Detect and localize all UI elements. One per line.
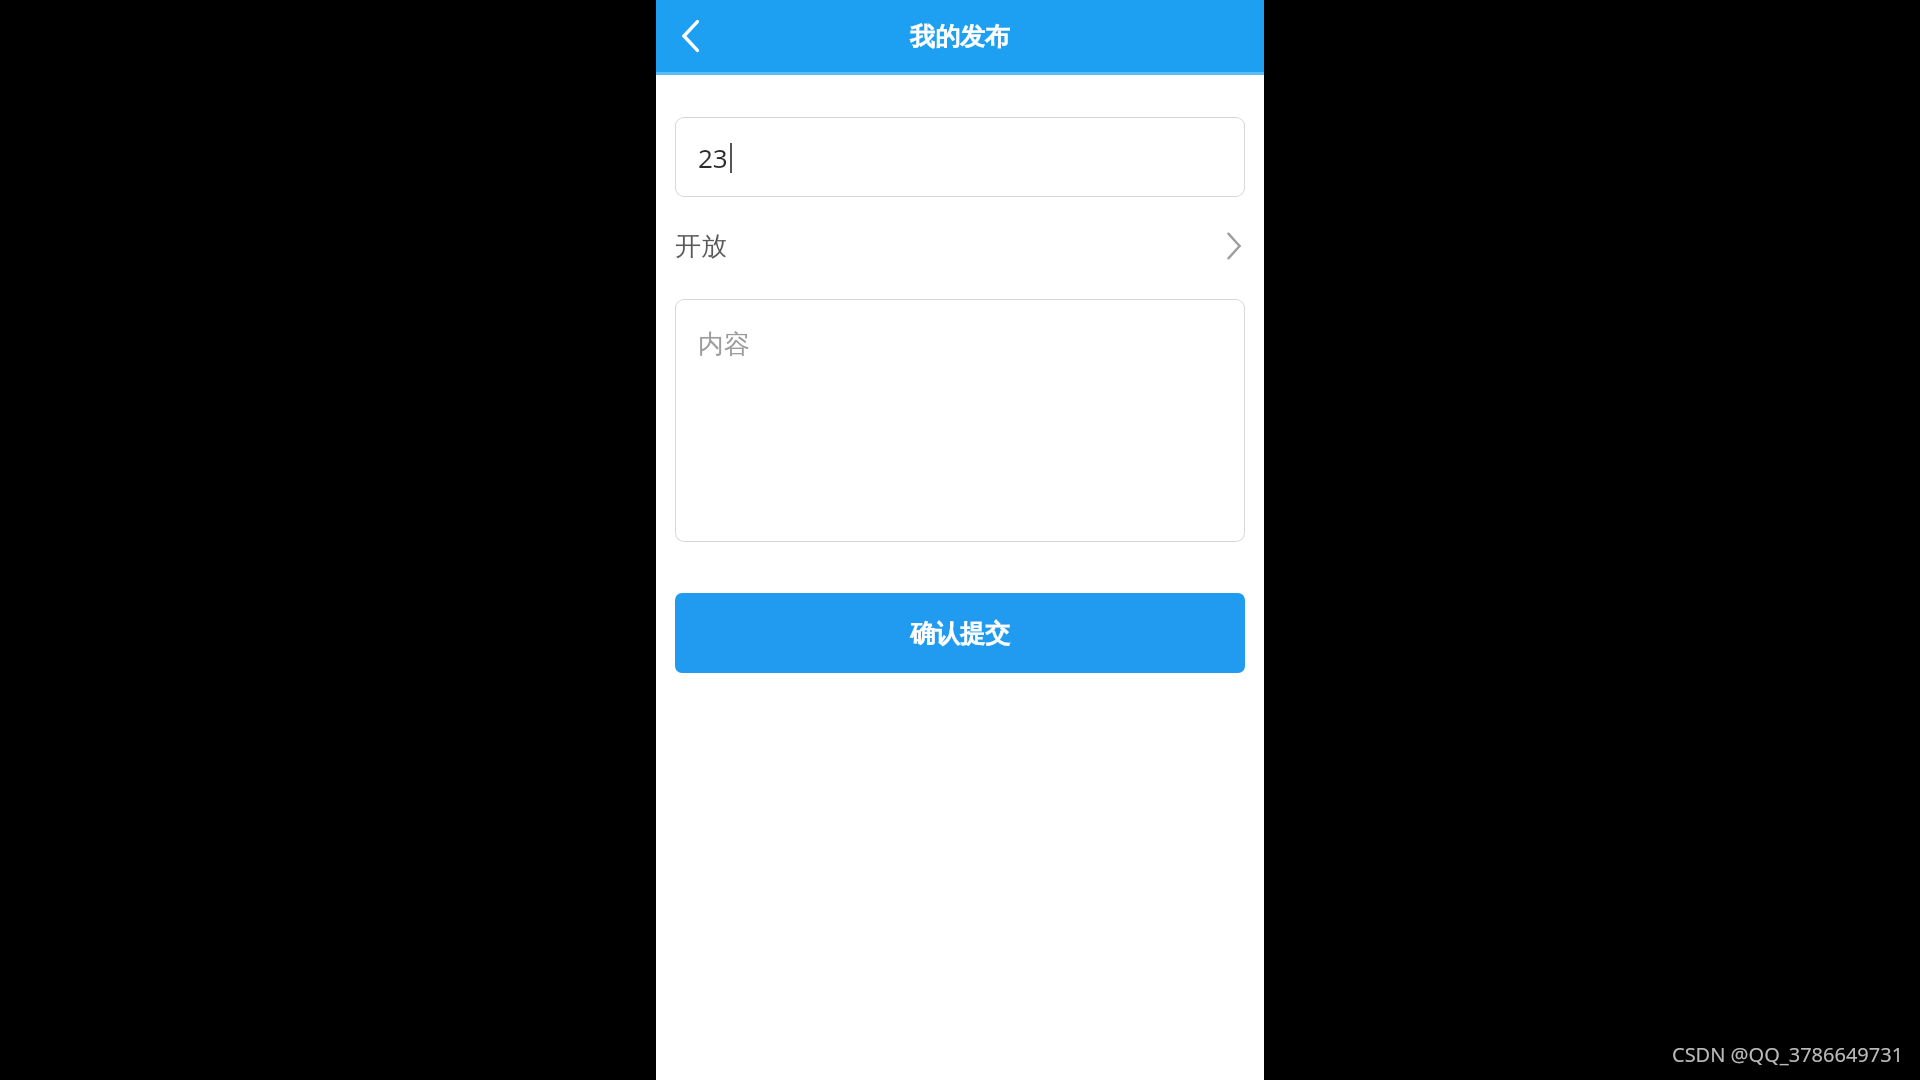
staticText: 确认提交 <box>910 618 1010 649</box>
button[interactable]: Back <box>662 7 720 65</box>
button[interactable]: 开放 <box>656 218 1264 274</box>
staticText: 内容 <box>698 328 750 361</box>
button[interactable]: 23 <box>676 118 1244 196</box>
staticText: 23 <box>698 140 728 175</box>
staticText: 开放 <box>675 230 727 263</box>
staticText: CSDN @QQ_3786649731 <box>1672 1041 1904 1068</box>
button[interactable]: 确认提交 <box>675 593 1245 673</box>
staticText: 我的发布 <box>910 21 1010 52</box>
button[interactable]: 内容 <box>676 300 1244 541</box>
